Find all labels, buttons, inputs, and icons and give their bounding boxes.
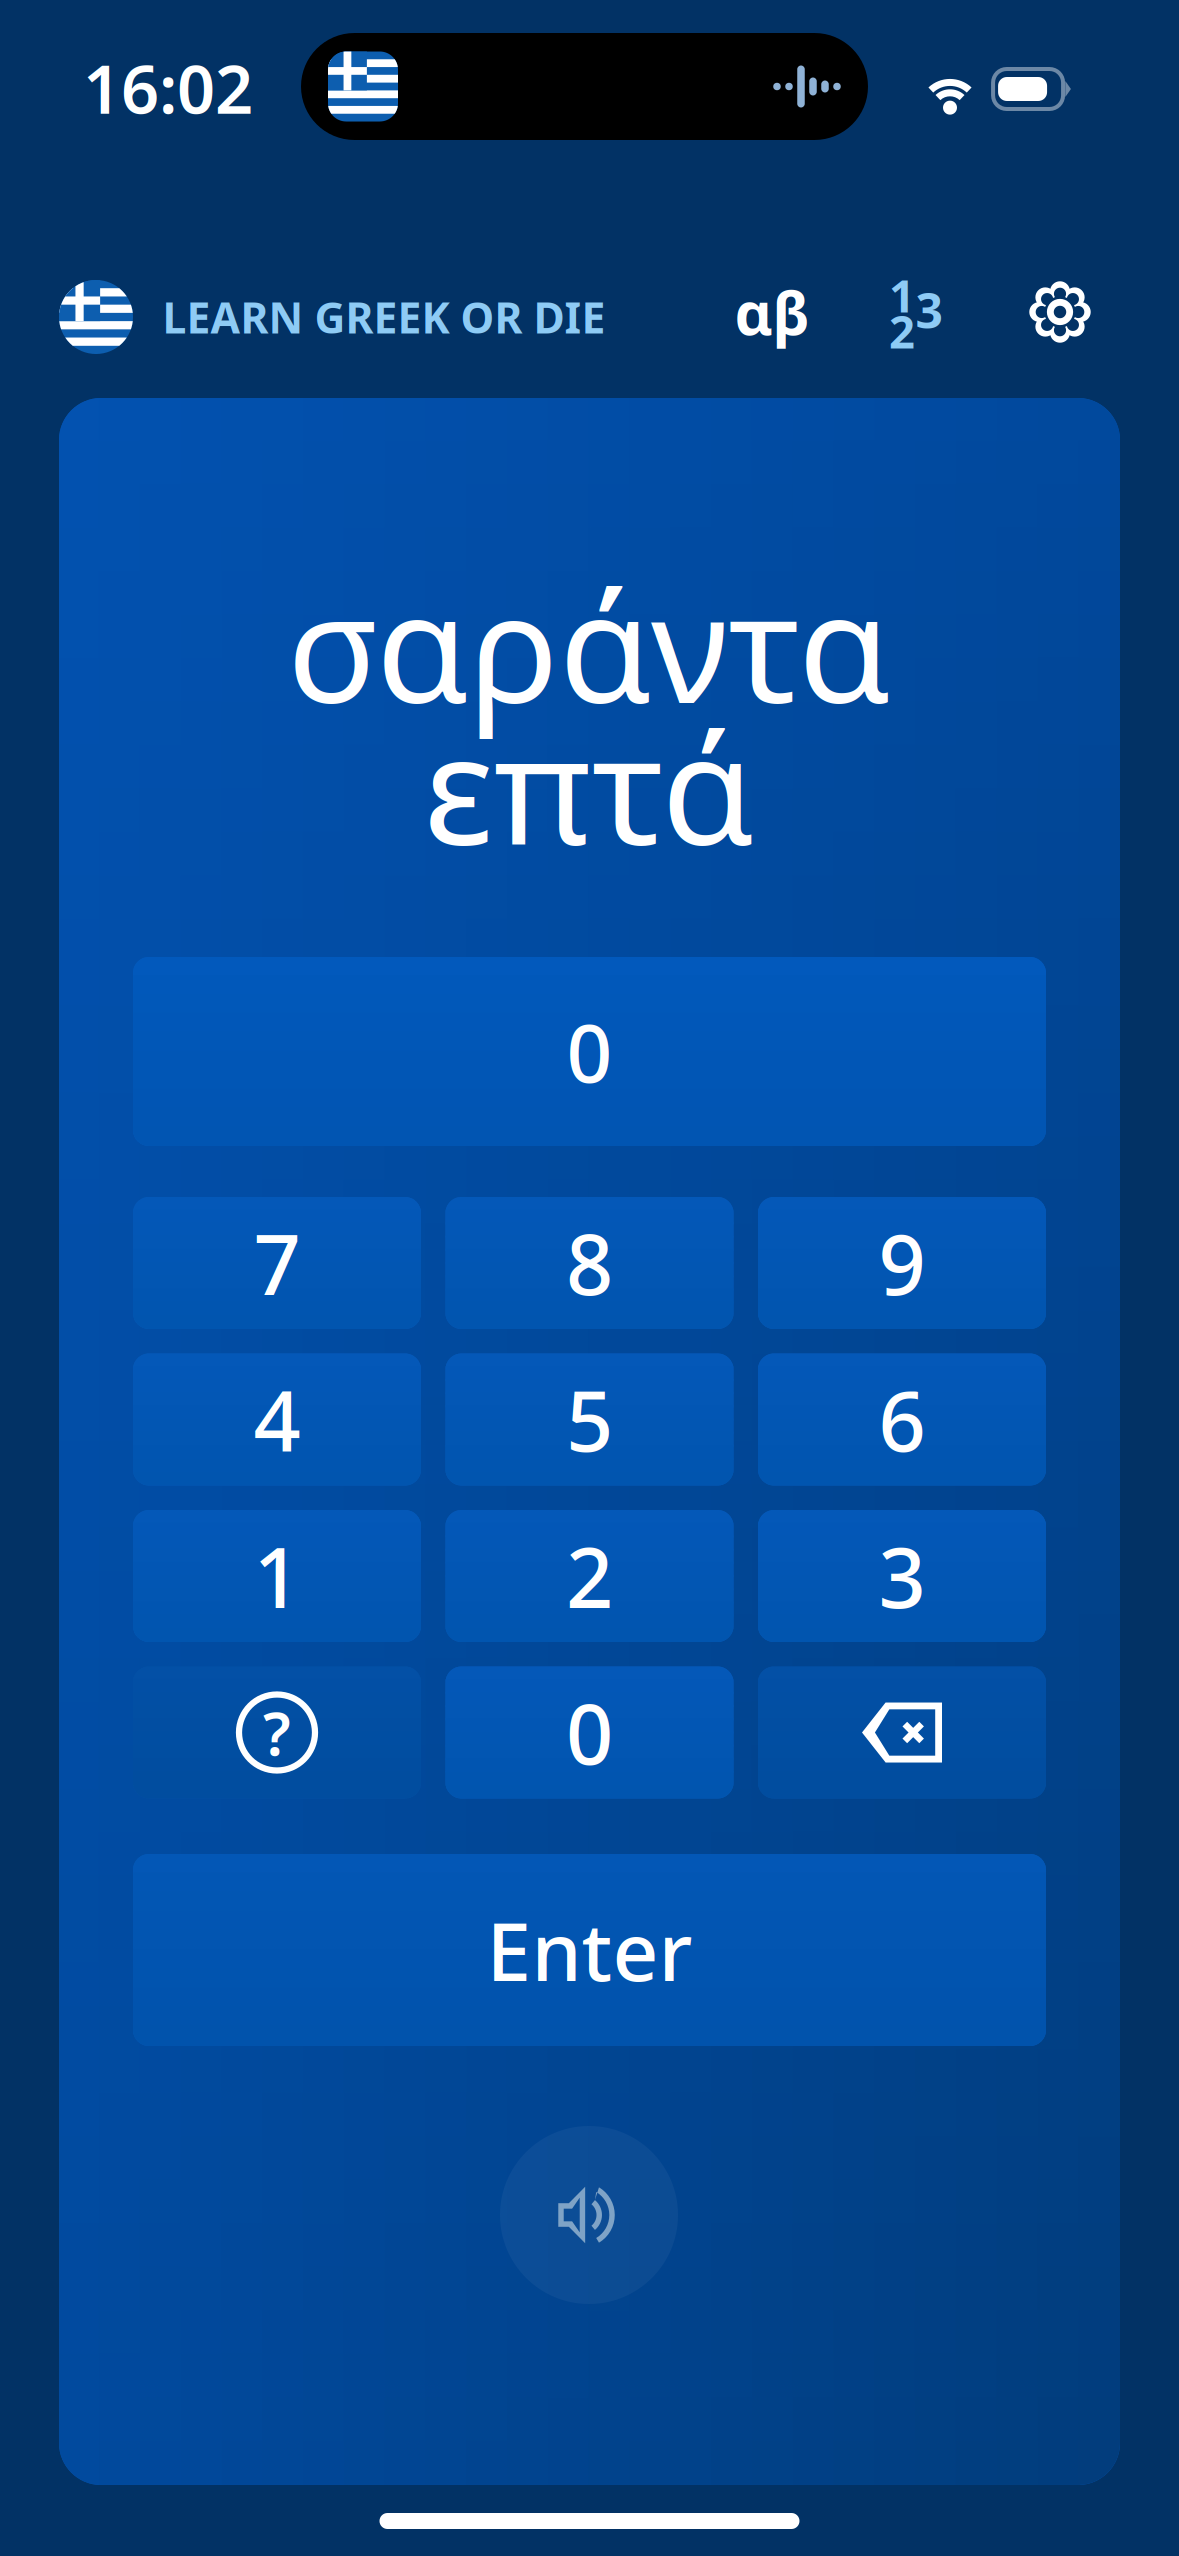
button[interactable]: 6 — [758, 1353, 1046, 1485]
button[interactable]: Delete — [758, 1666, 1046, 1798]
staticText: 0 — [566, 1678, 613, 1787]
staticText: 8 — [566, 1208, 613, 1318]
button[interactable]: Settings — [1008, 264, 1112, 360]
button[interactable]: 3 — [758, 1510, 1046, 1642]
staticText: 6 — [878, 1365, 925, 1474]
staticText: 2 — [566, 1521, 613, 1631]
staticText: 9 — [878, 1208, 925, 1318]
staticText: 1 — [889, 265, 915, 325]
button[interactable]: 0 — [445, 1666, 733, 1798]
staticText: ? — [263, 1693, 291, 1772]
staticText: 7 — [253, 1208, 300, 1318]
staticText: 3 — [878, 1521, 925, 1631]
button[interactable]: Letters — [720, 264, 824, 360]
staticText: LEARN GREEK OR DIE — [162, 289, 605, 345]
staticText: σαράντα — [287, 546, 891, 744]
staticText: επτά — [423, 688, 754, 886]
button[interactable]: 9 — [758, 1197, 1046, 1329]
button[interactable]: Enter — [133, 1854, 1046, 2046]
staticText: 2 — [889, 301, 915, 361]
staticText: 0 — [566, 998, 612, 1105]
staticText: 1 — [253, 1521, 300, 1631]
button[interactable]: 1 — [133, 1510, 421, 1642]
staticText: 3 — [915, 278, 942, 342]
button[interactable]: 8 — [445, 1197, 733, 1329]
staticText: 16:02 — [83, 44, 253, 132]
staticText: 4 — [253, 1365, 300, 1474]
button[interactable]: Hint — [133, 1666, 421, 1798]
staticText: Enter — [486, 1897, 692, 2003]
staticText: αβ — [734, 273, 809, 351]
button[interactable]: 4 — [133, 1353, 421, 1485]
button[interactable]: Numbers — [864, 266, 968, 362]
button[interactable]: 7 — [133, 1197, 421, 1329]
button[interactable]: 5 — [445, 1353, 733, 1485]
button[interactable]: 2 — [445, 1510, 733, 1642]
staticText: 5 — [566, 1365, 613, 1474]
button[interactable]: Play pronunciation — [500, 2126, 678, 2304]
